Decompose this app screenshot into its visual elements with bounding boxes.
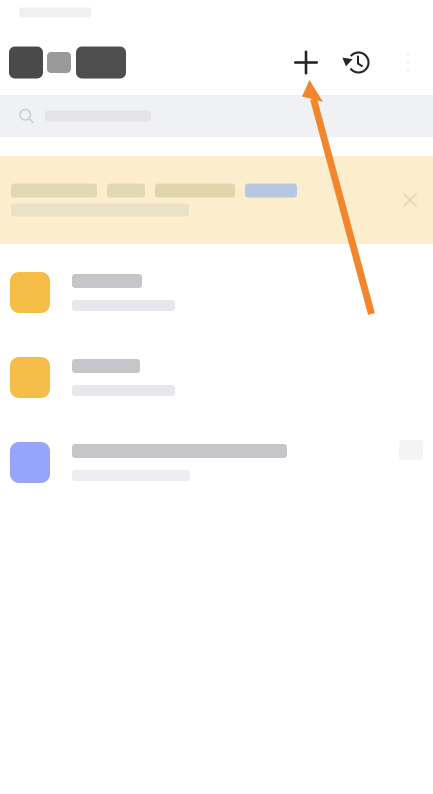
button[interactable]: List item 1 [0,250,433,335]
button[interactable]: Add [286,42,326,82]
button[interactable]: Search [0,95,433,137]
button[interactable]: List item 2 [0,335,433,420]
button[interactable]: History [338,42,378,82]
button[interactable]: List item 3 [0,420,433,505]
button[interactable]: Dismiss banner [394,184,426,216]
